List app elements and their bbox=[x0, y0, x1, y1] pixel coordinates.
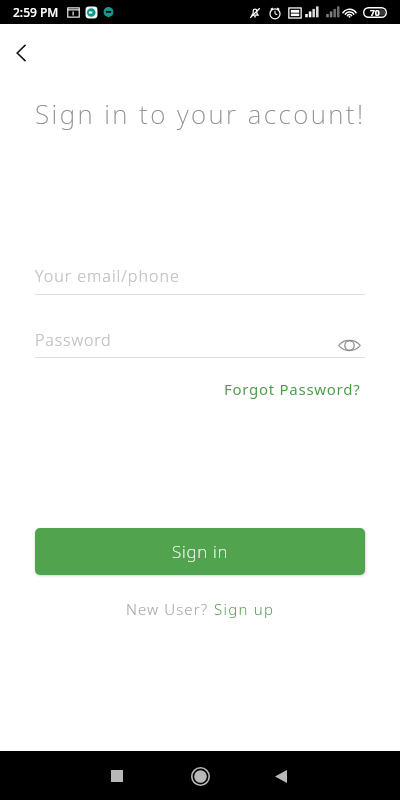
staticText: 70 bbox=[370, 7, 380, 18]
staticText: Sign in bbox=[172, 540, 229, 563]
staticText: Password bbox=[35, 329, 112, 351]
staticText: New User? bbox=[126, 599, 214, 619]
staticText: 2:59 PM bbox=[13, 4, 59, 20]
button[interactable]: Sign up bbox=[214, 599, 275, 619]
button[interactable]: Your email/phone bbox=[35, 262, 365, 295]
button[interactable]: Show password bbox=[335, 331, 363, 359]
button[interactable]: Sign in bbox=[35, 528, 365, 575]
staticText: Your email/phone bbox=[35, 265, 180, 287]
button[interactable]: Forgot Password? bbox=[224, 379, 361, 399]
button[interactable]: Recents bbox=[97, 756, 137, 796]
button[interactable]: Back bbox=[261, 756, 301, 796]
button[interactable]: Password bbox=[35, 326, 365, 358]
button[interactable]: Back bbox=[2, 34, 39, 71]
button[interactable]: Home bbox=[180, 756, 220, 796]
staticText: Sign in to your account! bbox=[35, 96, 366, 131]
